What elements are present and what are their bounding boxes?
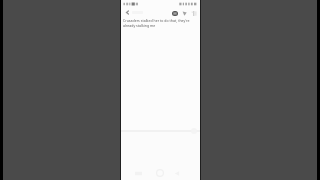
button[interactable]: Video call (171, 9, 179, 17)
button[interactable]: More options (190, 9, 198, 17)
button[interactable]: Home (154, 167, 166, 179)
button[interactable]: Back (123, 8, 131, 16)
button[interactable]: Call (180, 9, 188, 17)
staticText: Crusaders stalked her to do that, they'r… (123, 18, 192, 28)
button[interactable]: Recent apps (133, 168, 144, 179)
